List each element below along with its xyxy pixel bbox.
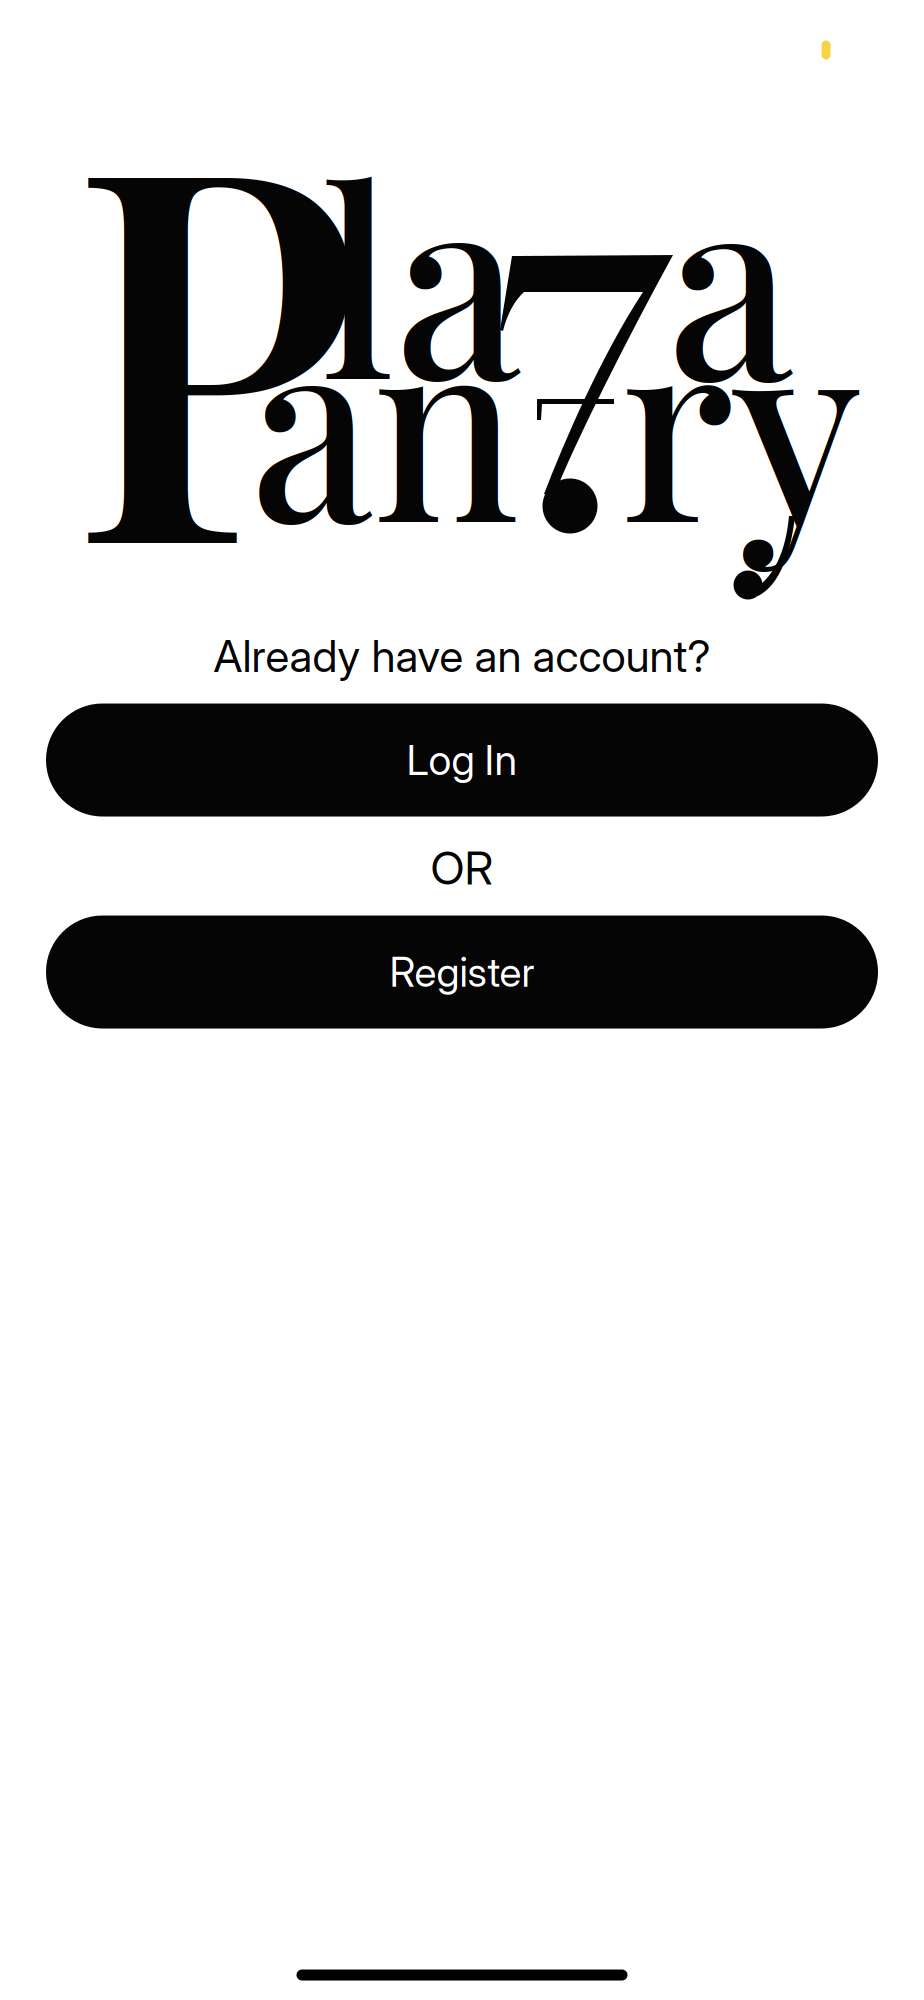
staticText: Already have an account? xyxy=(213,629,710,683)
button[interactable]: Register xyxy=(46,915,878,1028)
staticText: Log In xyxy=(406,735,517,785)
staticText: OR xyxy=(430,841,493,895)
staticText: P xyxy=(71,0,393,674)
button[interactable]: Log In xyxy=(46,703,878,816)
staticText: Register xyxy=(389,947,534,997)
